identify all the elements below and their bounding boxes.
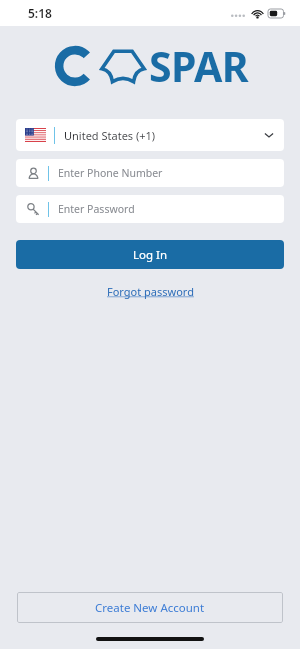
button[interactable]: United States (+1) (16, 119, 284, 151)
button[interactable]: Log In (16, 240, 284, 269)
button[interactable]: Enter Password (16, 195, 284, 223)
staticText: Enter Password (58, 202, 135, 216)
staticText: Enter Phone Number (58, 166, 163, 180)
staticText: Forgot password (107, 284, 194, 299)
button[interactable]: Create New Account (17, 592, 283, 623)
staticText: SPAR (149, 38, 249, 94)
staticText: Create New Account (95, 600, 205, 616)
staticText: Log In (133, 247, 168, 263)
staticText: United States (+1) (64, 128, 156, 143)
button[interactable]: Enter Phone Number (16, 159, 284, 187)
button[interactable]: Forgot password (101, 282, 200, 301)
staticText: 5:18 (28, 5, 52, 21)
